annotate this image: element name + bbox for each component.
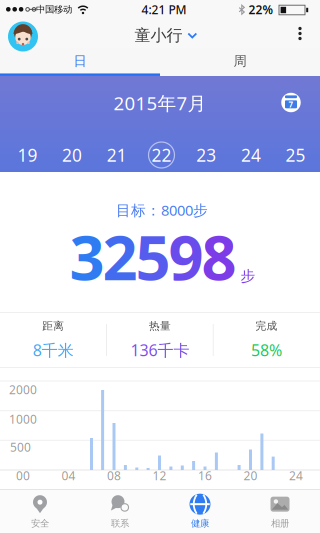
button[interactable]: 完成 <box>213 312 320 368</box>
staticText: 08 <box>107 467 121 483</box>
staticText: 8千米 <box>33 339 74 361</box>
button[interactable] <box>298 27 302 40</box>
button[interactable] <box>8 21 38 51</box>
staticText: 9 <box>168 216 203 297</box>
button[interactable]: 21 <box>94 138 139 172</box>
staticText: 2015年7月 <box>113 91 206 115</box>
button[interactable]: 19 <box>5 138 50 172</box>
staticText: 136千卡 <box>130 339 189 361</box>
button[interactable]: 25 <box>273 138 318 172</box>
staticText: 7 <box>288 99 293 110</box>
button[interactable]: 7 <box>281 93 301 112</box>
button[interactable]: 23 <box>184 138 229 172</box>
staticText: 1000 <box>9 411 37 427</box>
staticText: 距离 <box>42 319 64 332</box>
staticText: 25 <box>286 143 306 166</box>
button[interactable]: 联系 <box>80 490 160 533</box>
staticText: 16 <box>198 467 212 483</box>
staticText: 完成 <box>255 319 277 332</box>
button[interactable]: 健康 <box>160 490 240 533</box>
button[interactable]: 22 <box>139 138 184 172</box>
staticText: 相册 <box>271 518 289 529</box>
staticText: 24 <box>289 467 303 483</box>
staticText: 19 <box>17 143 37 166</box>
staticText: 热量 <box>149 319 171 332</box>
staticText: 4:21 PM <box>141 1 186 17</box>
staticText: 2000 <box>9 381 37 397</box>
button[interactable]: 周 <box>160 48 320 73</box>
staticText: 目标：8000步 <box>116 200 208 220</box>
button[interactable]: 日 <box>0 48 160 73</box>
staticText: 21 <box>107 143 127 166</box>
staticText: 22% <box>248 1 273 17</box>
staticText: 23 <box>196 143 216 166</box>
button[interactable]: 距离 <box>0 312 107 368</box>
staticText: 联系 <box>111 518 129 529</box>
button[interactable]: 安全 <box>0 490 80 533</box>
button[interactable]: 热量 <box>107 312 213 368</box>
staticText: 500 <box>10 439 31 455</box>
staticText: 24 <box>241 143 261 166</box>
button[interactable]: 童小行 <box>134 26 197 45</box>
staticText: 3 <box>69 216 104 297</box>
staticText: 健康 <box>191 518 209 529</box>
staticText: 12 <box>152 467 166 483</box>
staticText: 58% <box>251 339 282 361</box>
button[interactable]: 相册 <box>240 490 320 533</box>
staticText: 童小行 <box>134 26 182 45</box>
button[interactable]: 24 <box>229 138 273 172</box>
staticText: 安全 <box>31 518 49 529</box>
staticText: 8 <box>201 216 236 297</box>
staticText: 中国移动 <box>36 4 72 15</box>
button[interactable]: 20 <box>50 138 94 172</box>
staticText: 20 <box>62 143 82 166</box>
staticText: 22 <box>151 143 171 166</box>
staticText: 04 <box>61 467 75 483</box>
staticText: 5 <box>135 216 170 297</box>
staticText: 步 <box>240 267 255 285</box>
staticText: 2 <box>102 216 137 297</box>
staticText: 20 <box>243 467 257 483</box>
staticText: 周 <box>233 53 246 69</box>
staticText: 00 <box>16 467 30 483</box>
staticText: 日 <box>73 53 86 69</box>
